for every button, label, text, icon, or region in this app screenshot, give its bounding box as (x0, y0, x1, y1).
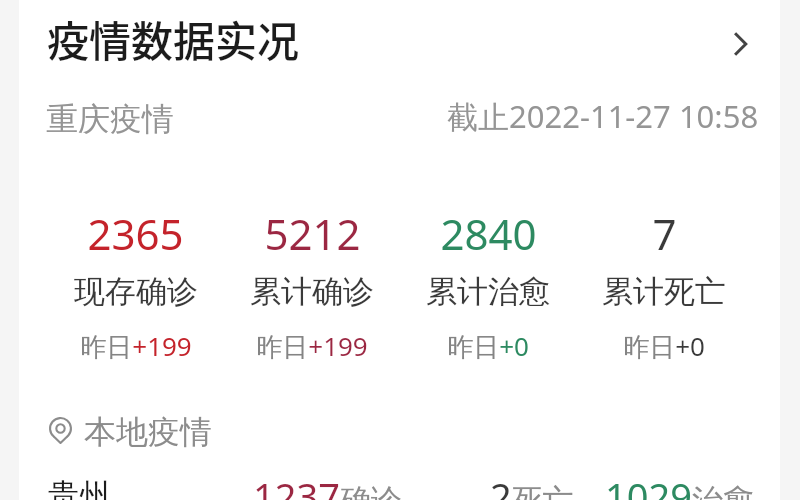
button[interactable]: 2365 (47, 205, 224, 364)
button[interactable]: 2840 (400, 205, 576, 364)
staticText: 疫情数据实况 (47, 8, 300, 69)
staticText: 5212 (264, 205, 361, 262)
staticText: 现存确诊 (74, 272, 198, 311)
staticText: 2365 (87, 205, 184, 262)
staticText: 昨日+0 (447, 328, 529, 364)
staticText: 贵州 (48, 476, 110, 500)
staticText: 2840 (440, 205, 537, 262)
button[interactable]: Open epidemic data details (713, 16, 765, 72)
staticText: 累计治愈 (426, 272, 550, 311)
staticText: 2死亡 (490, 470, 574, 500)
staticText: 累计确诊 (250, 272, 374, 311)
staticText: 重庆疫情 (46, 99, 174, 139)
staticText: 累计死亡 (602, 272, 726, 311)
staticText: 7 (652, 205, 677, 262)
button[interactable]: 7 (576, 205, 752, 364)
staticText: 昨日+199 (256, 328, 368, 364)
staticText: 昨日+0 (623, 328, 705, 364)
staticText: 截止2022-11-27 10:58 (447, 95, 759, 137)
button[interactable]: 5212 (224, 205, 400, 364)
staticText: 1029治愈 (605, 470, 754, 500)
button[interactable]: 疫情数据实况 (0, 0, 800, 84)
staticText: 1237确诊 (253, 470, 402, 500)
button[interactable]: 本地疫情 (0, 412, 800, 452)
staticText: 本地疫情 (84, 412, 212, 452)
button[interactable]: 贵州 (0, 474, 800, 500)
staticText: 昨日+199 (80, 328, 192, 364)
